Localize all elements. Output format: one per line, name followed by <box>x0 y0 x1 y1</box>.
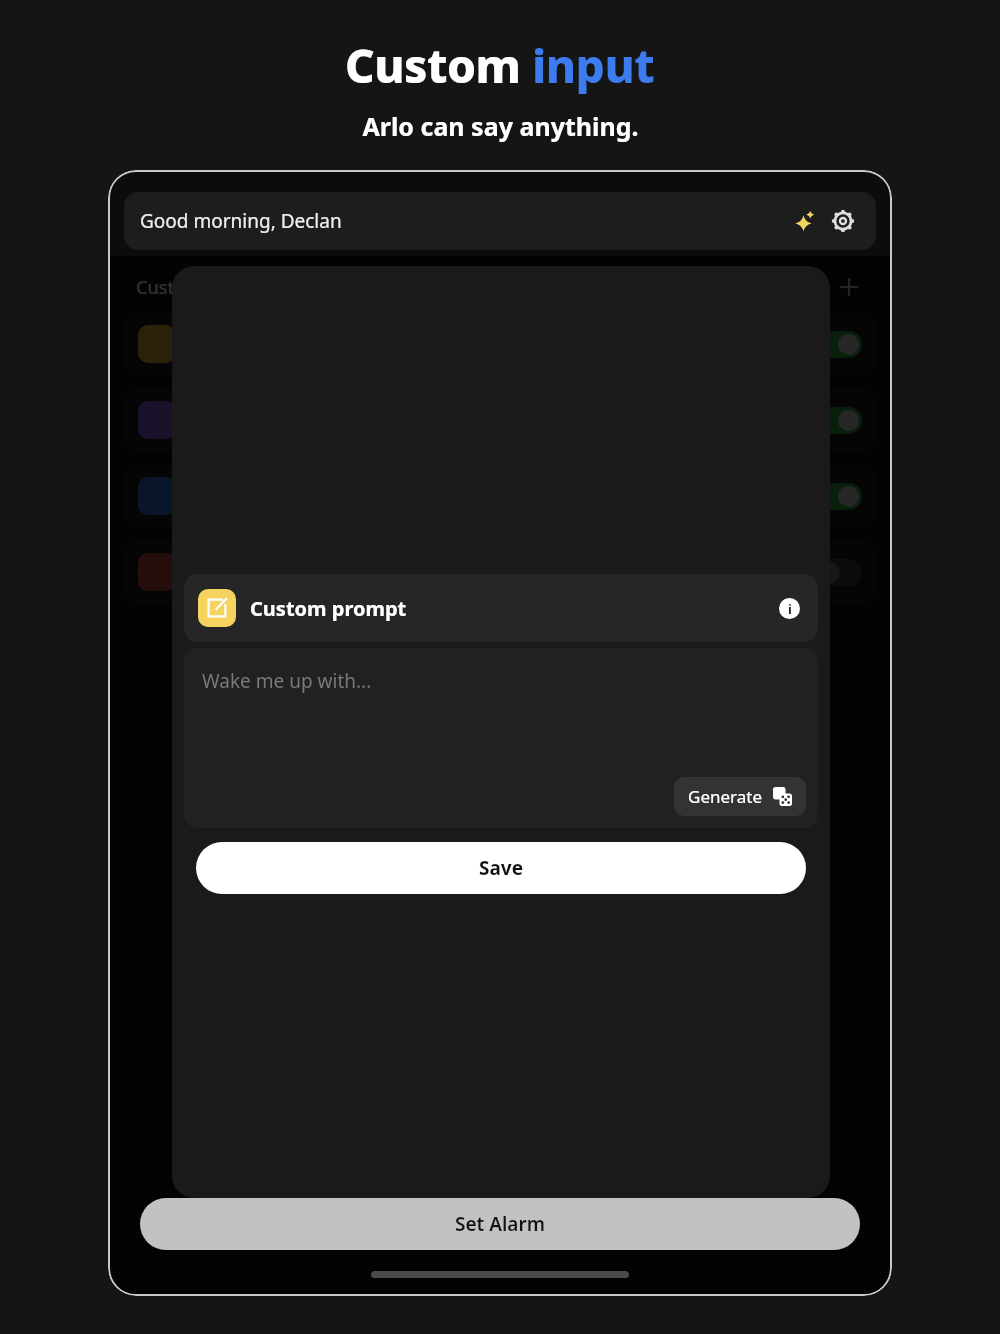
staticText: Save <box>479 855 524 881</box>
button[interactable]: Wake me up with... <box>184 648 818 828</box>
staticText: Custom alarms <box>136 275 266 300</box>
button[interactable]: Set Alarm <box>140 1198 860 1250</box>
button[interactable] <box>124 312 876 376</box>
staticText: Wake me up with... <box>202 668 372 694</box>
button[interactable]: Generate <box>674 777 806 816</box>
staticText: input <box>532 34 655 97</box>
staticText: Arlo can say anything. <box>362 109 639 143</box>
staticText: Generate <box>688 785 763 808</box>
staticText: Set Alarm <box>455 1211 545 1237</box>
button[interactable]: Custom prompt <box>184 574 818 642</box>
button[interactable]: AI suggestions <box>786 204 820 238</box>
staticText: Custom prompt <box>250 595 407 622</box>
button[interactable] <box>124 464 876 528</box>
staticText: Good morning, Declan <box>140 208 342 234</box>
button[interactable]: Info <box>774 593 804 623</box>
button[interactable] <box>124 388 876 452</box>
button[interactable]: Add alarm <box>834 272 864 302</box>
button[interactable] <box>124 540 876 604</box>
button[interactable]: Save <box>196 842 806 894</box>
staticText: Custom <box>345 34 532 97</box>
staticText: i <box>788 600 792 618</box>
button[interactable]: Settings <box>826 204 860 238</box>
